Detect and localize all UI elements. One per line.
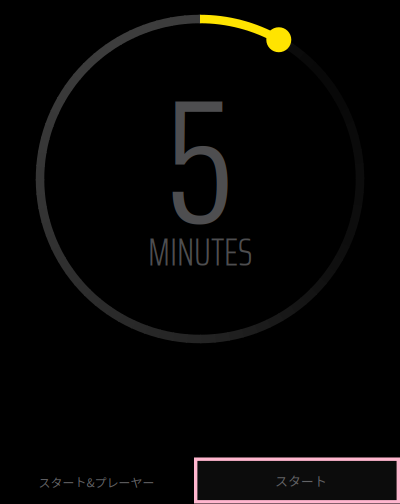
staticText: 5	[163, 45, 234, 267]
staticText: スタート	[275, 471, 327, 490]
staticText: スタート&プレーヤー	[38, 473, 154, 491]
button[interactable]: スタート	[194, 457, 400, 503]
staticText: MINUTES	[148, 222, 252, 282]
button[interactable]: スタート&プレーヤー	[0, 459, 193, 504]
